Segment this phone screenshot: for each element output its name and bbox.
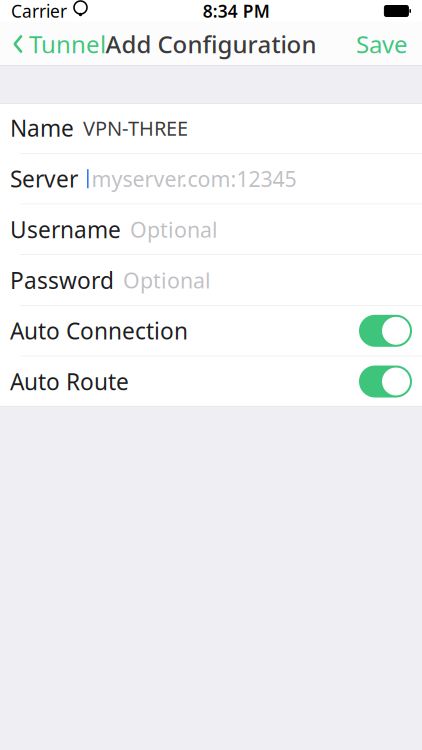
staticText: Optional bbox=[123, 266, 211, 294]
staticText: Name bbox=[10, 113, 74, 143]
staticText: Password bbox=[10, 265, 114, 295]
button[interactable]: Save bbox=[356, 22, 422, 66]
button[interactable]: Username bbox=[0, 204, 422, 254]
button[interactable]: Auto Connection bbox=[0, 306, 422, 356]
staticText: Auto Connection bbox=[10, 316, 188, 346]
staticText: Tunnel bbox=[29, 28, 106, 60]
staticText: 8:34 PM bbox=[203, 0, 270, 22]
staticText: Save bbox=[356, 28, 408, 60]
staticText: VPN-THREE bbox=[83, 115, 188, 141]
staticText: Add Configuration bbox=[105, 28, 316, 60]
staticText: Auto Route bbox=[10, 366, 129, 396]
staticText: myserver.com:12345 bbox=[92, 164, 297, 193]
button[interactable]: Server bbox=[0, 154, 422, 204]
button[interactable]: Auto Route bbox=[0, 356, 422, 406]
button[interactable]: Name bbox=[0, 103, 422, 153]
button[interactable]: Tunnel bbox=[0, 22, 106, 66]
staticText: Optional bbox=[130, 215, 218, 243]
staticText: Username bbox=[10, 214, 121, 244]
button[interactable]: Password bbox=[0, 255, 422, 305]
staticText: Server bbox=[10, 164, 78, 194]
staticText: Carrier bbox=[11, 0, 67, 22]
